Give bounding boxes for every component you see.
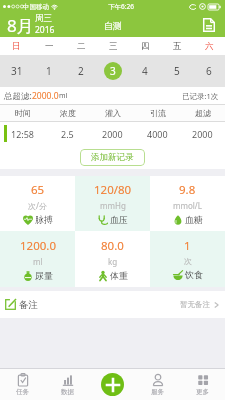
button[interactable]: 更多 bbox=[180, 369, 225, 400]
staticText: 中国移动 bbox=[23, 3, 49, 11]
button[interactable]: 2 bbox=[65, 55, 97, 87]
staticText: 120/80 bbox=[94, 182, 132, 198]
staticText: 引流 bbox=[150, 108, 166, 118]
staticText: 6 bbox=[206, 64, 212, 78]
button[interactable]: 备注 bbox=[0, 291, 225, 318]
staticText: 次/分 bbox=[28, 200, 47, 211]
button[interactable]: 31 bbox=[0, 55, 33, 87]
staticText: 4000 bbox=[147, 128, 168, 140]
staticText: 备注 bbox=[19, 299, 38, 311]
button[interactable]: 4 bbox=[129, 55, 161, 87]
button[interactable]: 9.8 bbox=[150, 176, 225, 231]
staticText: 31 bbox=[11, 64, 23, 78]
button[interactable]: 1 bbox=[150, 231, 225, 287]
staticText: 1 bbox=[184, 238, 191, 254]
button[interactable]: Add record bbox=[101, 373, 124, 396]
staticText: 2000 bbox=[192, 128, 213, 140]
staticText: 血糖 bbox=[185, 214, 203, 225]
staticText: mmol/L bbox=[173, 200, 203, 211]
staticText: 血压 bbox=[110, 214, 128, 225]
button[interactable]: 数据 bbox=[45, 369, 90, 400]
staticText: 80.0 bbox=[101, 238, 124, 254]
staticText: 1 bbox=[46, 64, 52, 78]
button[interactable]: 任务 bbox=[0, 369, 45, 400]
staticText: 下午6:26 bbox=[108, 2, 134, 11]
staticText: 四 bbox=[141, 41, 150, 52]
button[interactable]: Records bbox=[199, 15, 219, 35]
staticText: 灌入 bbox=[105, 108, 121, 118]
button[interactable]: 80.0 bbox=[75, 231, 150, 287]
button[interactable]: 服务 bbox=[135, 369, 180, 400]
staticText: 2.5 bbox=[61, 128, 74, 140]
staticText: 8月 bbox=[7, 14, 34, 37]
button[interactable]: 120/80 bbox=[75, 176, 150, 231]
staticText: 添加新记录 bbox=[91, 152, 134, 163]
button[interactable]: 3 bbox=[97, 55, 129, 87]
staticText: 日 bbox=[12, 41, 21, 52]
staticText: 2016 bbox=[35, 24, 55, 36]
staticText: 2000 bbox=[102, 128, 123, 140]
staticText: 尿量 bbox=[35, 270, 53, 281]
staticText: mmHg bbox=[100, 200, 126, 211]
staticText: 时间 bbox=[15, 108, 31, 118]
button[interactable]: 1 bbox=[33, 55, 65, 87]
button[interactable]: 6 bbox=[193, 55, 225, 87]
staticText: 三 bbox=[109, 41, 118, 52]
staticText: ml bbox=[33, 256, 43, 267]
button[interactable]: 添加新记录 bbox=[80, 149, 145, 166]
button[interactable]: 5 bbox=[161, 55, 193, 87]
staticText: 一 bbox=[45, 41, 54, 52]
staticText: 2000.0 bbox=[32, 90, 59, 102]
staticText: 已记录:1次 bbox=[182, 91, 219, 101]
staticText: 总超滤: bbox=[4, 90, 32, 102]
staticText: 超滤 bbox=[195, 108, 211, 118]
staticText: 2 bbox=[78, 64, 84, 78]
staticText: 自测 bbox=[104, 20, 122, 31]
staticText: 次 bbox=[184, 256, 192, 266]
staticText: 服务 bbox=[151, 388, 164, 396]
staticText: 脉搏 bbox=[35, 214, 53, 225]
staticText: 任务 bbox=[16, 388, 29, 396]
staticText: 暂无备注 bbox=[180, 300, 210, 309]
button[interactable]: 65 bbox=[0, 176, 75, 231]
staticText: 周三 bbox=[35, 13, 52, 24]
staticText: 5 bbox=[174, 64, 180, 78]
staticText: 体重 bbox=[110, 270, 128, 281]
staticText: 1200.0 bbox=[20, 238, 56, 254]
staticText: 浓度 bbox=[60, 108, 76, 118]
staticText: 3 bbox=[110, 64, 116, 78]
staticText: 饮食 bbox=[185, 269, 203, 280]
button[interactable]: 1200.0 bbox=[0, 231, 75, 287]
staticText: 二 bbox=[77, 41, 86, 52]
staticText: ml bbox=[59, 91, 68, 101]
staticText: 4 bbox=[142, 64, 148, 78]
staticText: 六 bbox=[205, 41, 214, 52]
staticText: 12:58 bbox=[11, 128, 35, 140]
staticText: 65 bbox=[31, 182, 45, 198]
staticText: 数据 bbox=[61, 388, 74, 396]
button[interactable]: 12:58 bbox=[0, 122, 225, 145]
staticText: kg bbox=[108, 256, 118, 267]
staticText: 五 bbox=[173, 41, 182, 52]
staticText: 9.8 bbox=[179, 182, 196, 198]
staticText: 更多 bbox=[196, 388, 209, 396]
